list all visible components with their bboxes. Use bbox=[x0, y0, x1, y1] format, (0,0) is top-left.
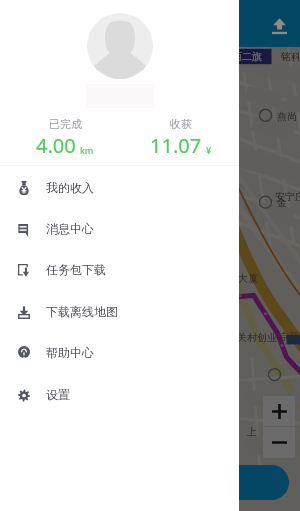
staticText: 燕尚 bbox=[277, 110, 297, 123]
button[interactable]: 设置 bbox=[0, 375, 239, 414]
button[interactable]: Start task bbox=[150, 465, 289, 500]
staticText: 铭科 bbox=[281, 50, 300, 63]
staticText: 我的收入 bbox=[46, 180, 94, 195]
staticText: 金 bbox=[277, 196, 287, 209]
staticText: ¥ bbox=[206, 144, 212, 156]
staticText: 11.07 bbox=[150, 132, 202, 159]
button[interactable]: 任务包下载 bbox=[0, 250, 239, 289]
button[interactable]: 下载离线地图 bbox=[0, 292, 239, 331]
button[interactable]: Zoom out bbox=[263, 427, 295, 458]
staticText: 设置 bbox=[46, 387, 70, 402]
button[interactable]: 消息中心 bbox=[0, 209, 239, 248]
staticText: 京新高速 bbox=[279, 330, 300, 343]
staticText: 帮助中心 bbox=[46, 345, 94, 360]
staticText: 安宁庄 bbox=[275, 190, 300, 203]
staticText: 4.00 bbox=[36, 132, 76, 159]
button[interactable]: 我的收入 bbox=[0, 168, 239, 207]
staticText: 上 bbox=[247, 425, 257, 438]
staticText: km bbox=[80, 144, 94, 156]
staticText: 西二旗 bbox=[232, 50, 262, 63]
staticText: 下载离线地图 bbox=[46, 304, 118, 319]
staticText: 消息中心 bbox=[46, 221, 94, 236]
button[interactable]: Zoom in bbox=[263, 396, 295, 426]
staticText: 收获 bbox=[170, 117, 192, 131]
staticText: 关村创业 bbox=[237, 331, 277, 344]
button[interactable]: Upload bbox=[266, 13, 292, 39]
staticText: 大厦 bbox=[238, 272, 258, 285]
staticText: 任务包下载 bbox=[46, 262, 106, 277]
button[interactable]: 帮助中心 bbox=[0, 333, 239, 372]
staticText: 已完成 bbox=[49, 117, 82, 131]
